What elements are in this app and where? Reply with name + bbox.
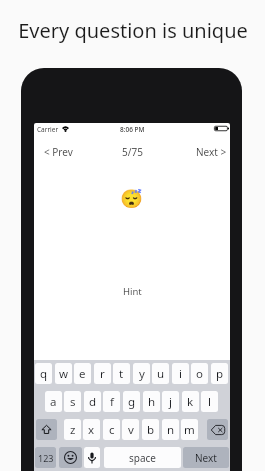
- staticText: space: [129, 451, 156, 465]
- staticText: x: [88, 422, 95, 438]
- staticText: f: [110, 394, 114, 410]
- button[interactable]: w: [55, 363, 72, 384]
- button[interactable]: m: [181, 419, 198, 440]
- staticText: Next >: [196, 145, 227, 159]
- button[interactable]: i: [172, 363, 189, 384]
- staticText: e: [79, 366, 86, 382]
- staticText: l: [208, 394, 211, 410]
- button[interactable]: h: [143, 391, 160, 412]
- staticText: 8:06 PM: [120, 125, 145, 134]
- staticText: a: [50, 394, 57, 410]
- button[interactable]: p: [211, 363, 228, 384]
- button[interactable]: c: [103, 419, 120, 440]
- staticText: p: [216, 366, 224, 382]
- button[interactable]: < Prev: [34, 140, 83, 164]
- staticText: h: [148, 394, 156, 410]
- button[interactable]: b: [142, 419, 159, 440]
- button[interactable]: r: [94, 363, 111, 384]
- button[interactable]: l: [201, 391, 218, 412]
- staticText: Every question is unique: [18, 17, 248, 44]
- staticText: Hint: [123, 285, 142, 297]
- button[interactable]: u: [152, 363, 169, 384]
- staticText: w: [59, 366, 69, 382]
- staticText: u: [157, 366, 165, 382]
- button[interactable]: g: [123, 391, 140, 412]
- button[interactable]: s: [64, 391, 81, 412]
- staticText: z: [70, 422, 76, 438]
- staticText: q: [40, 366, 48, 382]
- button[interactable]: v: [122, 419, 139, 440]
- staticText: < Prev: [44, 145, 73, 159]
- button[interactable]: Dictation: [84, 447, 100, 468]
- button[interactable]: q: [35, 363, 52, 384]
- button[interactable]: Next >: [188, 140, 230, 164]
- button[interactable]: f: [103, 391, 120, 412]
- button[interactable]: o: [191, 363, 208, 384]
- staticText: v: [128, 422, 134, 438]
- staticText: j: [169, 394, 172, 410]
- button[interactable]: Hint: [119, 283, 146, 299]
- staticText: s: [70, 394, 76, 410]
- button[interactable]: e: [74, 363, 91, 384]
- staticText: i: [179, 366, 182, 382]
- button[interactable]: j: [162, 391, 179, 412]
- staticText: o: [196, 366, 203, 382]
- button[interactable]: a: [45, 391, 62, 412]
- staticText: r: [100, 366, 105, 382]
- button[interactable]: z: [64, 419, 81, 440]
- button[interactable]: 123: [35, 447, 56, 468]
- button[interactable]: t: [113, 363, 130, 384]
- button[interactable]: n: [162, 419, 179, 440]
- button[interactable]: x: [83, 419, 100, 440]
- staticText: y: [139, 366, 145, 382]
- staticText: 5/75: [122, 145, 143, 159]
- button[interactable]: k: [182, 391, 199, 412]
- button[interactable]: Next: [183, 447, 229, 468]
- button[interactable]: d: [84, 391, 101, 412]
- button[interactable]: Backspace: [207, 419, 228, 440]
- staticText: b: [147, 422, 155, 438]
- staticText: Carrier: [37, 125, 59, 134]
- staticText: k: [187, 394, 194, 410]
- staticText: Next: [195, 451, 217, 465]
- staticText: d: [89, 394, 97, 410]
- staticText: c: [109, 422, 115, 438]
- button[interactable]: Shift: [36, 419, 57, 440]
- staticText: t: [119, 366, 124, 382]
- staticText: g: [128, 394, 136, 410]
- button[interactable]: y: [133, 363, 150, 384]
- button[interactable]: space: [104, 447, 181, 468]
- staticText: n: [167, 422, 175, 438]
- button[interactable]: Emoji: [59, 447, 82, 468]
- staticText: 123: [38, 452, 54, 464]
- staticText: m: [184, 422, 195, 438]
- staticText: 😴: [120, 188, 143, 209]
